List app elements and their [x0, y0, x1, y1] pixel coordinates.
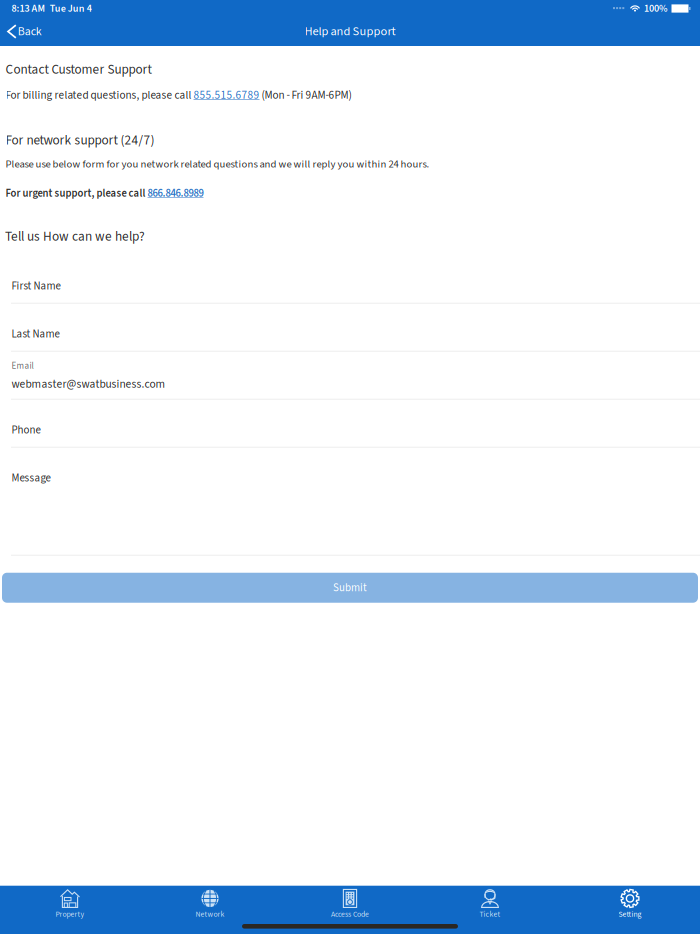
staticText: Last Name [11, 326, 59, 342]
button[interactable]: Network [140, 886, 280, 920]
staticText: Network [195, 909, 224, 920]
button[interactable]: Ticket [420, 886, 560, 920]
button[interactable]: Submit [2, 573, 698, 603]
button[interactable]: Property [0, 886, 140, 920]
staticText: Tell us How can we help? [5, 227, 145, 246]
staticText: Ticket [479, 909, 500, 920]
staticText: webmaster@swatbusiness.com [11, 376, 165, 392]
staticText: First Name [11, 278, 60, 294]
button[interactable]: Back [0, 18, 50, 45]
staticText: 8:13 AM [11, 1, 45, 16]
staticText: Submit [333, 580, 367, 595]
staticText: Help and Support [304, 23, 395, 40]
staticText: For urgent support, please call 866.846.… [5, 186, 203, 201]
button[interactable]: Access Code [280, 886, 420, 920]
staticText: For billing related questions, please ca… [5, 87, 351, 103]
staticText: Property [55, 909, 84, 920]
staticText: Email [11, 359, 33, 372]
staticText: Contact Customer Support [5, 60, 151, 79]
staticText: 100% [644, 1, 668, 16]
staticText: Setting [618, 909, 641, 920]
staticText: Access Code [331, 909, 369, 920]
staticText: Message [11, 470, 50, 486]
staticText: Phone [11, 422, 40, 438]
staticText: Please use below form for you network re… [5, 157, 429, 172]
button[interactable]: Setting [560, 886, 700, 920]
staticText: Back [18, 23, 42, 40]
staticText: For network support (24/7) [5, 131, 154, 150]
staticText: Tue Jun 4 [50, 1, 92, 16]
